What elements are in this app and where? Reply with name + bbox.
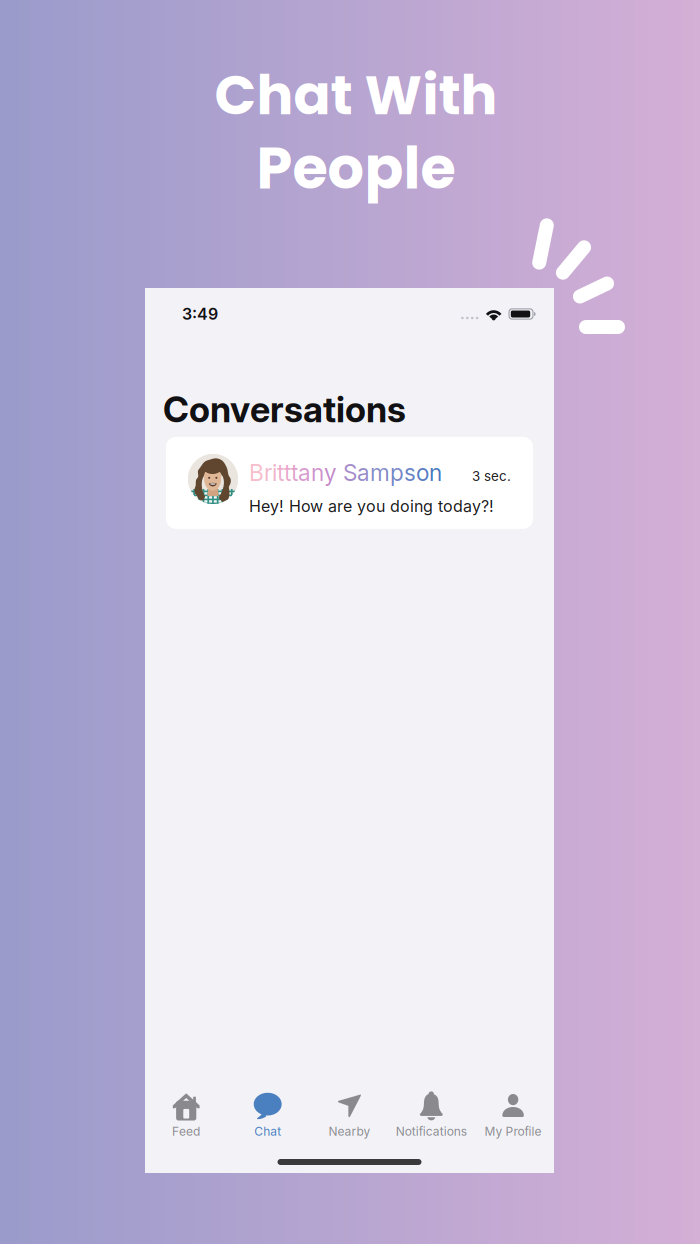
staticText: s (404, 459, 416, 486)
button[interactable]: Chat (227, 1088, 309, 1142)
button[interactable]: Nearby (309, 1088, 390, 1142)
button[interactable]: B (166, 437, 533, 529)
staticText: y (324, 459, 337, 486)
staticText: Nearby (328, 1124, 370, 1139)
staticText: t (291, 459, 298, 486)
staticText: t (284, 459, 291, 486)
staticText: 3 sec. (472, 468, 511, 484)
staticText: a (298, 459, 311, 486)
staticText: Hey! How are you doing today?! (249, 496, 494, 516)
staticText: a (357, 459, 370, 486)
staticText: o (416, 459, 429, 486)
staticText: n (311, 459, 324, 486)
staticText: B (249, 459, 264, 486)
staticText: t (277, 459, 284, 486)
staticText: S (343, 459, 357, 486)
staticText: i (272, 459, 277, 486)
staticText: Conversations (163, 388, 406, 431)
staticText: Chat (254, 1124, 281, 1139)
staticText: People (256, 128, 455, 209)
button[interactable]: Notifications (390, 1088, 472, 1142)
button[interactable]: Feed (145, 1088, 227, 1142)
staticText: r (264, 459, 272, 486)
staticText: My Profile (485, 1124, 542, 1139)
staticText: Chat With (214, 57, 497, 133)
staticText: Feed (172, 1124, 200, 1139)
staticText: m (370, 459, 390, 486)
staticText: n (429, 459, 442, 486)
staticText: 3:49 (182, 304, 218, 324)
staticText: Notifications (396, 1124, 467, 1139)
staticText: p (390, 459, 404, 486)
button[interactable]: My Profile (472, 1088, 554, 1142)
